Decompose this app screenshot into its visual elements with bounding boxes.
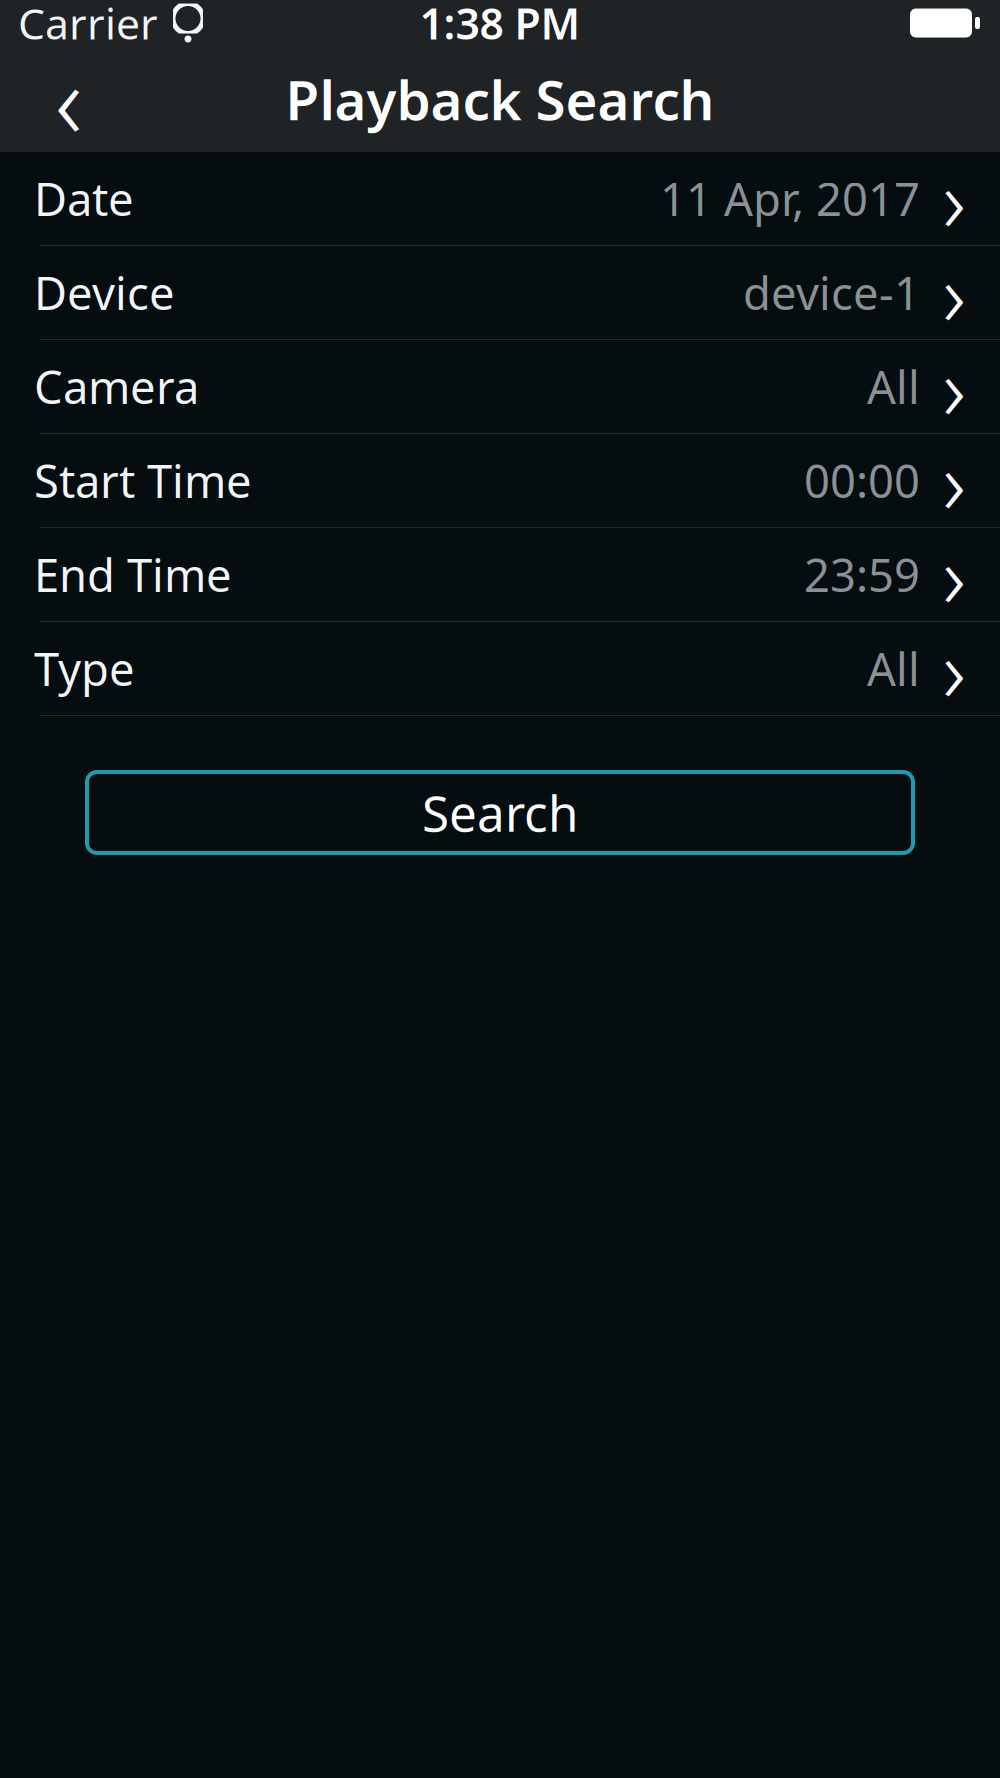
staticText: Date — [34, 168, 134, 229]
staticText: Start Time — [34, 450, 252, 511]
staticText: 23:59 — [804, 544, 920, 605]
staticText: All — [867, 356, 920, 417]
button[interactable]: Camera — [0, 340, 1000, 434]
staticText: Type — [34, 638, 135, 699]
staticText: Search — [422, 780, 578, 845]
button[interactable]: Search — [87, 772, 913, 853]
button[interactable]: Back — [24, 54, 114, 144]
staticText: End Time — [34, 544, 232, 605]
staticText: › — [942, 140, 965, 257]
staticText: 11 Apr, 2017 — [660, 168, 920, 229]
staticText: › — [942, 516, 965, 633]
staticText: Camera — [34, 356, 199, 417]
staticText: 1:38 PM — [419, 0, 580, 51]
button[interactable]: Type — [0, 622, 1000, 716]
staticText: ‹ — [55, 30, 83, 168]
staticText: All — [867, 638, 920, 699]
staticText: › — [942, 422, 965, 539]
staticText: › — [942, 234, 965, 351]
button[interactable]: End Time — [0, 528, 1000, 622]
staticText: 00:00 — [804, 450, 920, 511]
staticText: › — [942, 328, 965, 445]
staticText: › — [942, 610, 965, 727]
staticText: Carrier — [18, 0, 158, 51]
staticText: device-1 — [743, 262, 920, 323]
staticText: Playback Search — [285, 63, 714, 135]
staticText: Device — [34, 262, 175, 323]
button[interactable]: Start Time — [0, 434, 1000, 528]
button[interactable]: Date — [0, 152, 1000, 246]
button[interactable]: Device — [0, 246, 1000, 340]
